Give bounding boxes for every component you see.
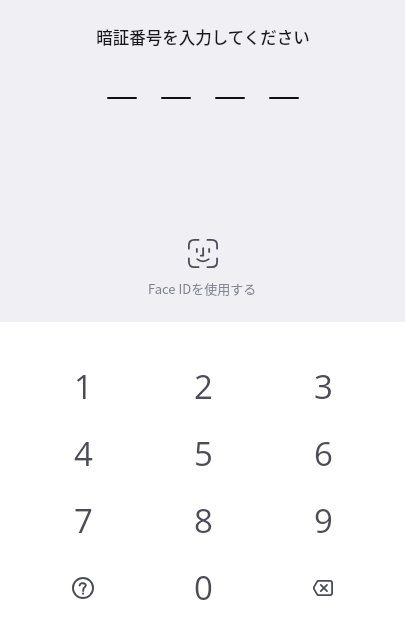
button[interactable]: 7 xyxy=(23,487,143,554)
button[interactable]: 3 xyxy=(263,353,383,420)
staticText: 暗証番号を入力してください xyxy=(96,25,310,49)
staticText: 6 xyxy=(314,431,333,476)
button[interactable]: 8 xyxy=(143,487,263,554)
staticText: 2 xyxy=(194,364,213,409)
staticText: 0 xyxy=(194,565,213,610)
button[interactable]: 1 xyxy=(23,353,143,420)
button[interactable]: 4 xyxy=(23,420,143,487)
staticText: 4 xyxy=(74,431,93,476)
staticText: 5 xyxy=(194,431,213,476)
button[interactable]: 5 xyxy=(143,420,263,487)
button[interactable]: 9 xyxy=(263,487,383,554)
button[interactable]: 2 xyxy=(143,353,263,420)
staticText: 8 xyxy=(194,498,213,543)
button[interactable]: Face IDを使用する xyxy=(0,239,405,298)
staticText: Face IDを使用する xyxy=(148,279,257,298)
staticText: 3 xyxy=(314,364,333,409)
button[interactable]: Backspace xyxy=(263,554,383,621)
staticText: 7 xyxy=(74,498,93,543)
staticText: 1 xyxy=(74,364,93,409)
button[interactable]: Help xyxy=(23,554,143,621)
button[interactable]: 0 xyxy=(143,554,263,621)
button[interactable]: 6 xyxy=(263,420,383,487)
staticText: 9 xyxy=(314,498,333,543)
